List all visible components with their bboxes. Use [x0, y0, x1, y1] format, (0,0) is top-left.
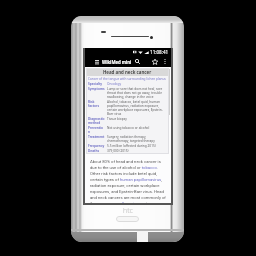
staticText: Oncology	[107, 82, 167, 86]
staticText: About 80% of head and neck cancer is due…	[90, 159, 166, 203]
staticText: Risk factors	[88, 100, 105, 108]
staticText: 11:08:41	[150, 49, 169, 55]
staticText: Prevention	[88, 126, 105, 134]
staticText: htc	[123, 206, 133, 216]
staticText: Specialty	[88, 82, 105, 86]
staticText: 379,000 (2015)	[107, 149, 167, 153]
button[interactable]: More options	[161, 56, 169, 67]
staticText: Tissue biopsy	[107, 117, 167, 121]
staticText: Deaths	[88, 149, 105, 153]
staticText: Not using tobacco or alcohol	[107, 126, 167, 130]
staticText: Frequency	[88, 144, 105, 148]
button[interactable]: Open navigation menu	[92, 56, 102, 67]
staticText: Treatment	[88, 135, 105, 139]
button[interactable]: Search	[132, 56, 142, 67]
staticText: Cancer of the tongue with surrounding li…	[88, 77, 166, 81]
staticText: Diagnostic method	[88, 117, 105, 125]
button[interactable]: Add bookmark	[150, 56, 160, 67]
staticText: Alcohol, tobacco, betel quid, human papi…	[107, 100, 167, 116]
staticText: Lump or sore that does not heal, sore th…	[107, 87, 167, 99]
staticText: WikiMed mini	[102, 59, 132, 65]
staticText: Surgery, radiation therapy, chemotherapy…	[107, 135, 167, 143]
staticText: 5.5 million (affected during 2015)	[107, 144, 167, 148]
staticText: Head and neck cancer	[103, 69, 152, 75]
staticText: Symptoms	[88, 87, 105, 91]
